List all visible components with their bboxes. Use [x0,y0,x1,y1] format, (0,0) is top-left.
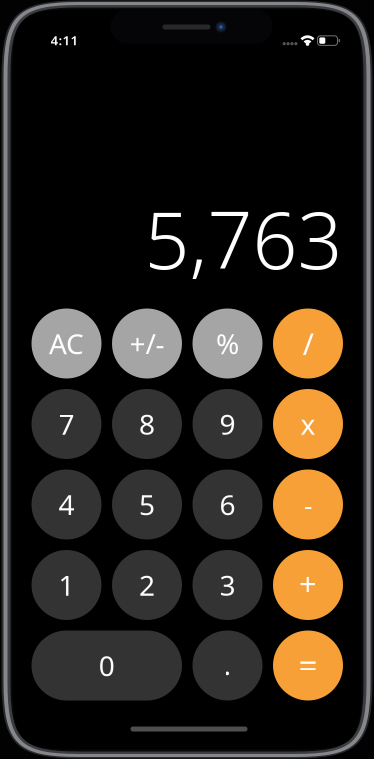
button[interactable]: - [273,469,343,539]
button[interactable]: x [273,389,343,459]
staticText: 4 [58,486,74,523]
button[interactable]: 1 [31,550,101,620]
button[interactable]: 7 [31,389,101,459]
staticText: 8 [139,405,155,443]
staticText: 9 [219,405,235,443]
button[interactable]: . [192,630,262,700]
button[interactable]: 6 [192,469,262,539]
staticText: 7 [58,405,74,443]
staticText: 6 [219,486,235,523]
button[interactable]: 5 [112,469,182,539]
staticText: 1 [58,566,74,604]
button[interactable]: = [273,630,343,700]
staticText: x [300,405,315,443]
staticText: + [299,563,317,603]
staticText: 0 [99,647,115,684]
button[interactable]: 3 [192,550,262,620]
staticText: +/- [129,325,164,362]
staticText: 4:11 [50,31,78,49]
button[interactable]: / [273,308,343,378]
staticText: % [216,325,239,362]
staticText: 5,763 [144,186,342,291]
button[interactable]: % [192,308,262,378]
staticText: = [298,642,317,687]
button[interactable]: 4 [31,469,101,539]
staticText: - [303,486,312,523]
staticText: 3 [219,566,235,604]
button[interactable]: +/- [112,308,182,378]
staticText: / [302,323,313,364]
staticText: . [223,646,231,683]
button[interactable]: + [273,550,343,620]
staticText: 5 [139,486,155,523]
button[interactable]: 9 [192,389,262,459]
staticText: 2 [139,566,155,604]
button[interactable]: 8 [112,389,182,459]
staticText: AC [49,325,84,362]
button[interactable]: 0 [31,630,182,700]
button[interactable]: AC [31,308,101,378]
button[interactable]: 2 [112,550,182,620]
